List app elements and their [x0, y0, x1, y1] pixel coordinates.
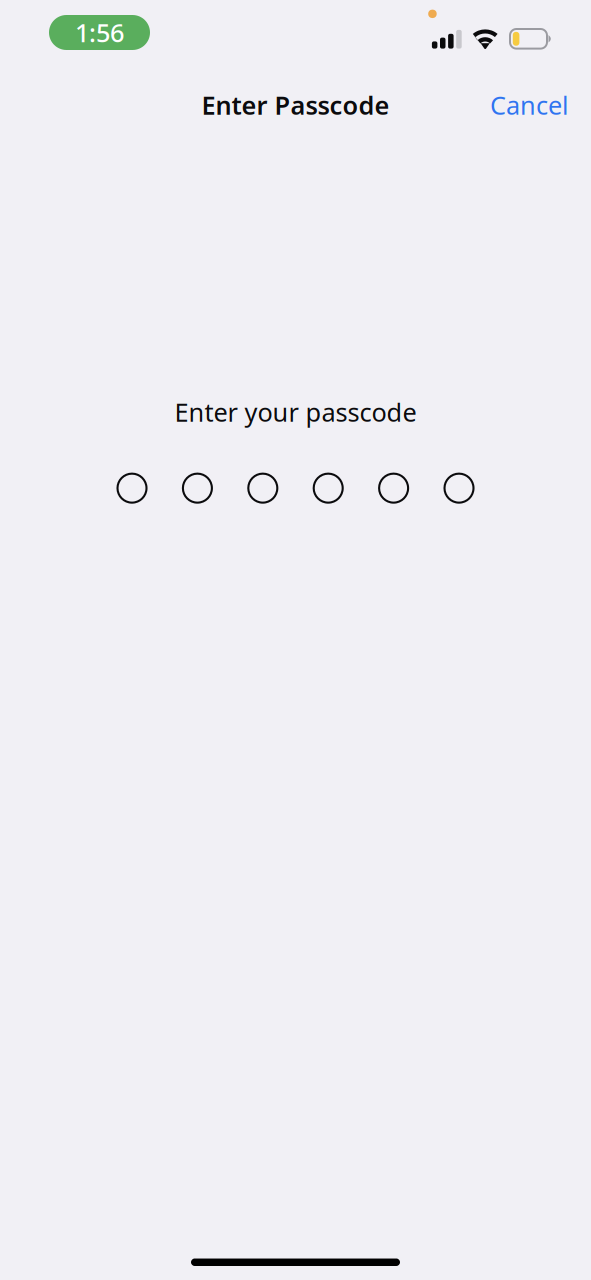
staticText: Enter Passcode — [201, 88, 389, 122]
staticText: Cancel — [490, 88, 569, 122]
navigationBar: Enter Passcode — [0, 62, 591, 120]
staticText: 1:56 — [75, 16, 124, 49]
secureTextField[interactable] — [117, 474, 473, 503]
staticText: Enter your passcode — [174, 395, 416, 429]
button[interactable]: Cancel — [483, 79, 576, 131]
group: Passcode — [117, 474, 473, 503]
